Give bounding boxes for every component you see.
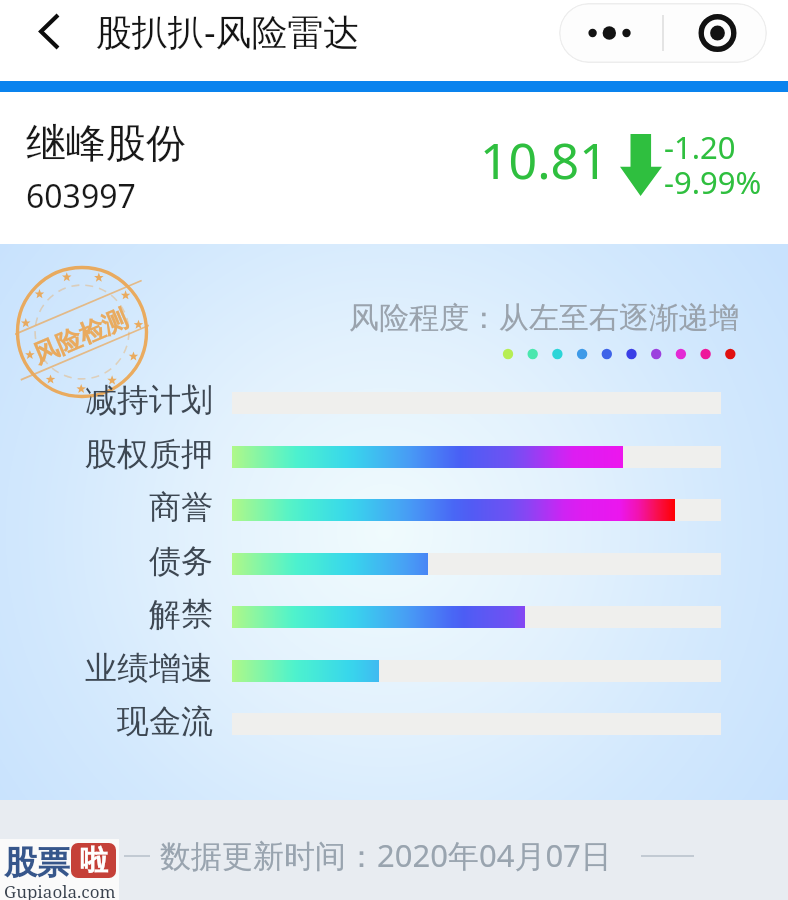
staticText: Gupiaola.com bbox=[4, 880, 116, 900]
staticText: 603997 bbox=[26, 174, 136, 218]
button[interactable]: Back bbox=[19, 0, 79, 62]
staticText: 啦 bbox=[80, 843, 108, 878]
button[interactable]: 现金流 bbox=[12, 698, 727, 750]
button[interactable]: 债务 bbox=[12, 538, 727, 590]
staticText: 股权质押 bbox=[20, 434, 213, 474]
staticText: 商誉 bbox=[20, 487, 213, 527]
button[interactable]: Close mini program bbox=[663, 3, 767, 63]
staticText: 现金流 bbox=[20, 701, 213, 741]
staticText: -1.20 bbox=[664, 126, 736, 168]
staticText: 股扒扒-风险雷达 bbox=[96, 7, 360, 56]
button[interactable]: 商誉 bbox=[12, 484, 727, 536]
staticText: 继峰股份 bbox=[26, 118, 186, 168]
staticText: 解禁 bbox=[20, 594, 213, 634]
button[interactable]: 解禁 bbox=[12, 591, 727, 643]
staticText: 数据更新时间：2020年04月07日 bbox=[160, 834, 612, 876]
staticText: 风险程度：从左至右逐渐递增 bbox=[349, 299, 739, 337]
staticText: 债务 bbox=[20, 541, 213, 581]
staticText: 业绩增速 bbox=[20, 648, 213, 688]
staticText: 10.81 bbox=[480, 126, 608, 194]
staticText: 股票 bbox=[4, 842, 70, 884]
button[interactable]: 业绩增速 bbox=[12, 645, 727, 697]
button[interactable]: 减持计划 bbox=[12, 377, 727, 429]
button[interactable]: 股权质押 bbox=[12, 431, 727, 483]
staticText: 风险检测 bbox=[28, 303, 132, 370]
staticText: 减持计划 bbox=[20, 380, 213, 420]
button[interactable]: More options bbox=[559, 3, 663, 63]
staticText: -9.99% bbox=[664, 161, 762, 203]
